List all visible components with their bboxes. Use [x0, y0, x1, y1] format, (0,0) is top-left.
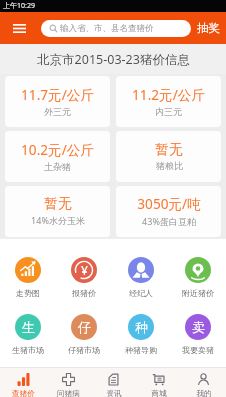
button[interactable]: 抽奖	[190, 12, 226, 44]
staticText: 11.2元/公斤	[132, 85, 205, 104]
button[interactable]: 查猪价	[0, 368, 46, 397]
staticText: 种	[135, 319, 148, 335]
staticText: 10.2元/公斤	[21, 140, 94, 159]
staticText: 商城	[151, 389, 167, 397]
staticText: 14%水分玉米	[31, 214, 85, 226]
staticText: 种猪导购	[125, 345, 157, 355]
button[interactable]: 商城	[136, 368, 181, 397]
staticText: ¥	[81, 262, 88, 278]
staticText: 附近猪价	[182, 288, 214, 298]
staticText: 我的	[196, 389, 212, 397]
staticText: 我要卖猪	[182, 345, 214, 355]
button[interactable]: 输入省、市、县名查猪价	[41, 20, 191, 37]
button[interactable]: 种	[112, 314, 169, 364]
staticText: 仔猪市场	[68, 345, 100, 355]
button[interactable]: 经纪人	[112, 257, 169, 307]
staticText: 43%蛋白豆粕	[142, 215, 196, 227]
button[interactable]: 走势图	[0, 257, 56, 307]
staticText: 上午10:29	[3, 1, 35, 11]
staticText: 外三元	[44, 106, 71, 117]
staticText: 卖	[192, 319, 205, 335]
staticText: 走势图	[16, 288, 40, 298]
staticText: 问猪病	[57, 389, 80, 397]
button[interactable]: 附近猪价	[169, 257, 226, 307]
staticText: 北京市2015-03-23猪价信息	[37, 51, 190, 68]
button[interactable]: 仔	[56, 314, 112, 364]
staticText: 土杂猪	[44, 161, 71, 172]
staticText: 生猪市场	[12, 345, 44, 355]
staticText: 11.7元/公斤	[21, 85, 94, 104]
button[interactable]: 11.7元/公斤	[5, 76, 110, 127]
staticText: 生	[22, 319, 35, 335]
staticText: 抽奖	[197, 21, 220, 35]
staticText: 仔	[78, 319, 91, 335]
staticText: 经纪人	[129, 288, 153, 298]
staticText: 查猪价	[12, 389, 35, 397]
staticText: 3050元/吨	[137, 194, 201, 213]
button[interactable]: ¥	[56, 257, 112, 307]
button[interactable]: 问猪病	[46, 368, 91, 397]
staticText: 内三元	[155, 106, 182, 117]
button[interactable]: 卖	[169, 314, 226, 364]
button[interactable]: 暂无	[5, 186, 110, 237]
staticText: 输入省、市、县名查猪价	[60, 23, 154, 34]
staticText: 报猪价	[72, 288, 96, 298]
staticText: 猪粮比	[156, 160, 183, 171]
button[interactable]: 我的	[181, 368, 226, 397]
staticText: 暂无	[155, 141, 183, 158]
button[interactable]: Menu	[0, 12, 36, 44]
button[interactable]: 10.2元/公斤	[5, 131, 110, 182]
button[interactable]: 3050元/吨	[116, 186, 221, 237]
button[interactable]: 资讯	[91, 368, 136, 397]
staticText: 资讯	[106, 389, 122, 397]
staticText: 暂无	[44, 195, 72, 212]
button[interactable]: 暂无	[116, 131, 221, 182]
button[interactable]: 生	[0, 314, 56, 364]
button[interactable]: 11.2元/公斤	[116, 76, 221, 127]
